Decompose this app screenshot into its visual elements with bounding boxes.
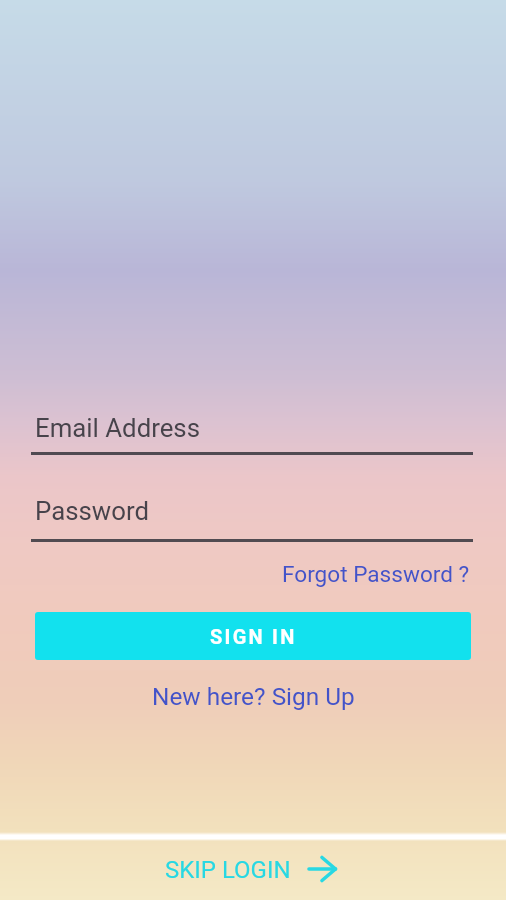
button[interactable]: Forgot Password ? (282, 561, 470, 587)
staticText: Email Address (35, 413, 200, 443)
button[interactable]: SKIP LOGIN (165, 856, 291, 884)
staticText: SIGN IN (210, 625, 297, 648)
button[interactable]: New here? Sign Up (152, 682, 355, 711)
button[interactable] (307, 855, 339, 883)
staticText: Password (35, 496, 149, 526)
button[interactable]: SIGN IN (35, 612, 471, 660)
